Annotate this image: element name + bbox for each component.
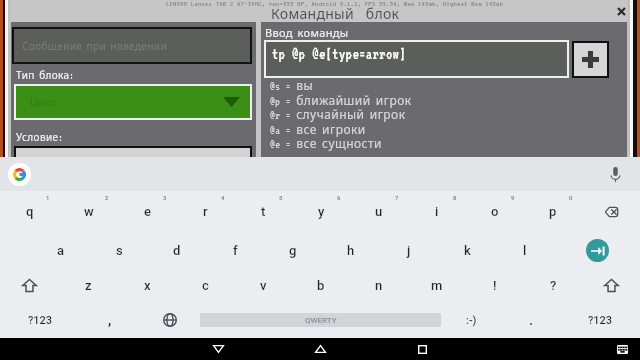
staticText: c <box>202 278 209 293</box>
button[interactable]: z <box>59 269 118 302</box>
button[interactable]: r <box>176 191 234 232</box>
button[interactable] <box>16 148 250 158</box>
button[interactable]: Верхний регистр <box>582 269 640 302</box>
button[interactable]: m <box>408 269 466 302</box>
button[interactable]: :-) <box>441 302 501 338</box>
staticText: k <box>464 243 471 258</box>
staticText: z <box>85 278 92 293</box>
staticText: tp @p @e[type=arrow] <box>272 46 407 62</box>
staticText: :-) <box>466 314 477 327</box>
staticText: e <box>144 204 151 219</box>
button[interactable]: g <box>264 232 322 269</box>
staticText: n <box>375 278 383 293</box>
staticText: 5 <box>279 194 283 201</box>
staticText: ! <box>493 278 497 293</box>
button[interactable]: f <box>206 232 264 269</box>
button[interactable]: Голосовой ввод <box>603 162 627 186</box>
button[interactable]: Сообщение при наведении <box>14 29 250 62</box>
staticText: f <box>233 243 238 258</box>
staticText: d <box>173 243 181 258</box>
staticText: ?123 <box>28 314 53 327</box>
staticText: b <box>317 278 325 293</box>
staticText: p <box>549 204 557 219</box>
button[interactable]: Главный экран <box>298 338 342 360</box>
button[interactable]: o <box>466 191 524 232</box>
button[interactable]: c <box>176 269 234 302</box>
button[interactable]: q <box>0 191 59 232</box>
staticText: l <box>523 243 527 258</box>
staticText: y <box>318 204 325 219</box>
staticText: Сообщение при наведении <box>22 39 168 53</box>
staticText: r <box>203 204 208 219</box>
button[interactable]: j <box>380 232 438 269</box>
staticText: t <box>261 204 266 219</box>
staticText: @p = ближайший игрок <box>270 92 412 108</box>
button[interactable]: k <box>438 232 496 269</box>
staticText: @a = все игроки <box>270 121 366 137</box>
button[interactable]: . <box>501 302 561 338</box>
button[interactable]: b <box>292 269 350 302</box>
button[interactable]: Сменить клавиатуру <box>604 338 640 360</box>
staticText: Командный блок <box>271 4 400 23</box>
staticText: s <box>116 243 123 258</box>
staticText: a <box>57 243 65 258</box>
button[interactable]: x <box>118 269 176 302</box>
button[interactable]: Верхний регистр <box>0 269 59 302</box>
button[interactable]: Цикл <box>16 86 250 118</box>
staticText: Условие: <box>16 130 63 144</box>
staticText: Тип блока: <box>16 68 74 82</box>
staticText: j <box>407 243 411 258</box>
button[interactable]: ?123 <box>561 302 640 338</box>
button[interactable]: l <box>496 232 554 269</box>
button[interactable]: Недавние приложения <box>400 338 444 360</box>
staticText: v <box>260 278 267 293</box>
staticText: Цикл <box>30 95 57 109</box>
staticText: 7 <box>395 194 399 201</box>
button[interactable]: Удалить <box>582 191 640 232</box>
staticText: 6 <box>337 194 341 201</box>
button[interactable]: Назад <box>196 338 240 360</box>
staticText: 2 <box>105 194 109 201</box>
button[interactable]: u <box>350 191 408 232</box>
staticText: , <box>108 311 112 329</box>
button[interactable]: ! <box>466 269 524 302</box>
staticText: ?123 <box>588 314 613 327</box>
staticText: 9 <box>511 194 515 201</box>
button[interactable]: ?123 <box>0 302 80 338</box>
button[interactable]: y <box>292 191 350 232</box>
button[interactable]: , <box>80 302 140 338</box>
button[interactable]: Добавить команду <box>574 43 607 76</box>
button[interactable]: QWERTY <box>200 313 441 327</box>
staticText: o <box>491 204 499 219</box>
button[interactable]: h <box>322 232 380 269</box>
staticText: u <box>375 204 383 219</box>
staticText: 8 <box>453 194 457 201</box>
button[interactable]: n <box>350 269 408 302</box>
staticText: 0 <box>569 194 573 201</box>
staticText: 4 <box>221 194 225 201</box>
staticText: QWERTY <box>305 316 337 325</box>
button[interactable]: w <box>59 191 118 232</box>
button[interactable]: t <box>234 191 292 232</box>
button[interactable]: Сменить язык <box>140 302 200 338</box>
button[interactable]: d <box>148 232 206 269</box>
button[interactable]: Далее <box>554 232 640 269</box>
staticText: ? <box>550 278 557 293</box>
button[interactable]: v <box>234 269 292 302</box>
button[interactable]: ? <box>524 269 582 302</box>
button[interactable]: tp @p @e[type=arrow] <box>266 42 567 76</box>
staticText: 3 <box>163 194 167 201</box>
staticText: @s = вы <box>270 77 314 93</box>
button[interactable]: i <box>408 191 466 232</box>
button[interactable]: p <box>524 191 582 232</box>
button[interactable]: a <box>31 232 90 269</box>
button[interactable]: s <box>90 232 148 269</box>
button[interactable]: Поиск Google <box>8 163 31 186</box>
button[interactable]: e <box>118 191 176 232</box>
staticText: w <box>84 204 94 219</box>
button[interactable]: Закрыть <box>613 3 630 20</box>
staticText: LENOVO Lenovo TAB 2 A7-30HC, run=859 HP,… <box>166 0 504 8</box>
staticText: 1 <box>46 194 50 201</box>
staticText: . <box>529 311 534 329</box>
staticText: i <box>435 204 439 219</box>
